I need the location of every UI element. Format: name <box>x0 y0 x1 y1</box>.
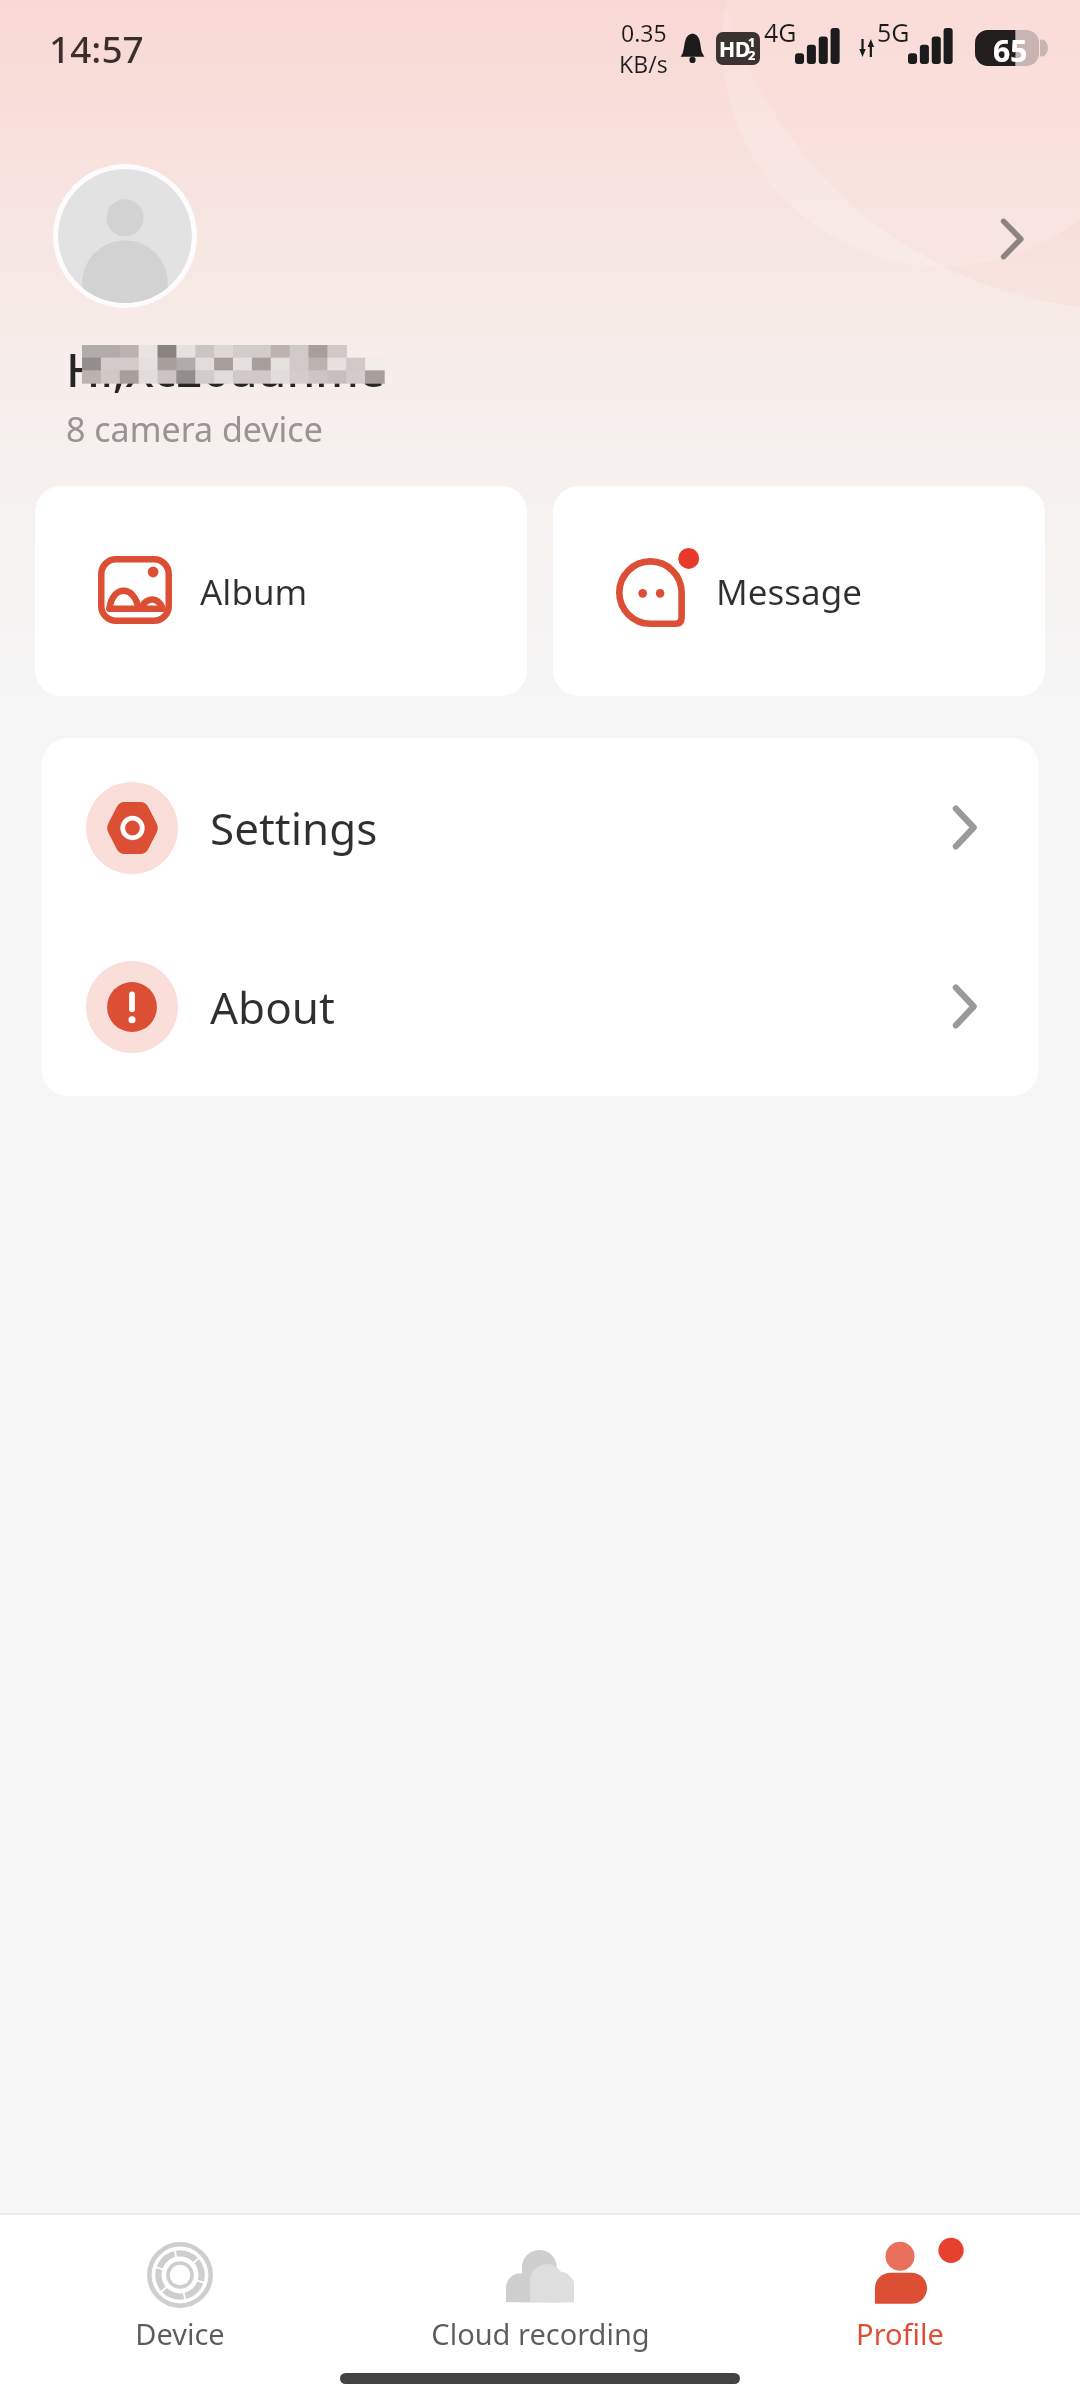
staticText: Message <box>716 568 862 616</box>
staticText: HD <box>719 35 751 64</box>
button[interactable]: Hi,Xc26uunme <box>0 0 1080 470</box>
staticText: Hi,Xc26uunme <box>66 338 386 401</box>
staticText: Cloud recording <box>431 2314 650 2353</box>
staticText: 14:57 <box>49 23 144 73</box>
button[interactable]: Message <box>553 486 1045 696</box>
staticText: 8 camera device <box>66 406 323 452</box>
button[interactable]: Cloud recording <box>360 2215 720 2400</box>
staticText: 0.35 <box>621 17 667 48</box>
staticText: Album <box>200 568 308 616</box>
button[interactable]: Profile <box>720 2215 1080 2400</box>
staticText: About <box>210 977 335 1037</box>
other: Account details <box>999 218 1025 260</box>
staticText: Profile <box>856 2314 944 2353</box>
staticText: 1 <box>748 33 756 51</box>
button[interactable]: About <box>42 917 1038 1096</box>
staticText: KB/s <box>619 48 668 79</box>
staticText: 4G <box>764 15 797 49</box>
staticText: Settings <box>210 798 378 858</box>
button[interactable]: Album <box>35 486 527 696</box>
button[interactable]: Device <box>0 2215 360 2400</box>
staticText: 5G <box>877 15 910 49</box>
staticText: 2 <box>748 46 756 64</box>
button[interactable]: Settings <box>42 738 1038 917</box>
staticText: Device <box>135 2314 225 2353</box>
staticText: 65 <box>993 30 1028 66</box>
